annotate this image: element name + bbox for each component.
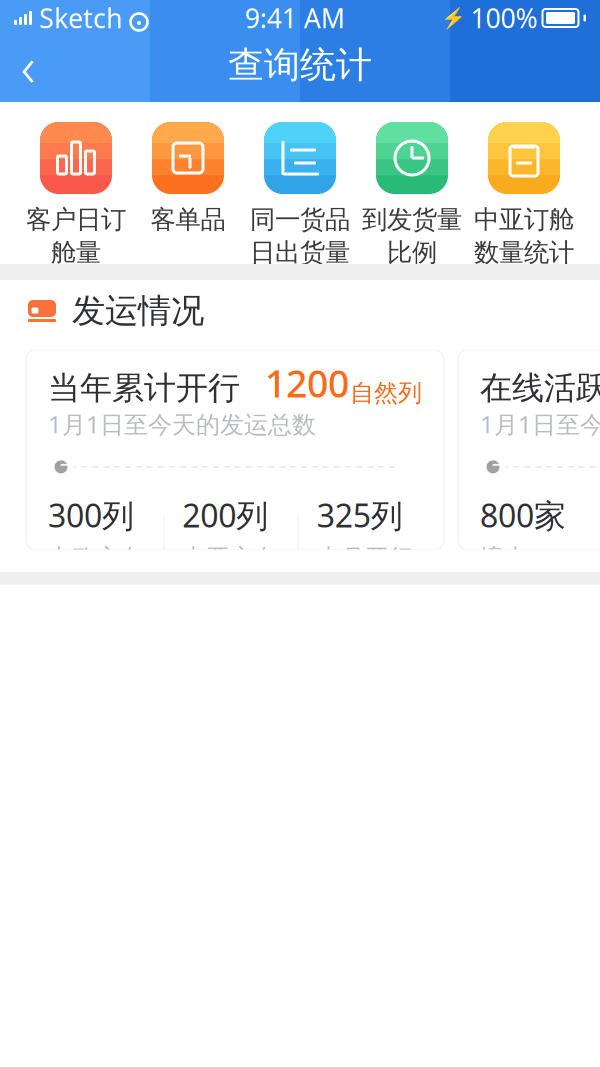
staticText: 舱量 <box>51 237 101 268</box>
staticText: 当年累计开行 <box>48 368 240 408</box>
staticText: 比例 <box>387 237 437 268</box>
staticText: 中欧方向 <box>48 543 144 573</box>
staticText: 9:41 AM <box>245 0 345 36</box>
button[interactable]: 客户日订 <box>20 122 132 256</box>
staticText: 本月开行 <box>317 543 413 573</box>
staticText: 客单品 <box>150 204 225 235</box>
staticText: 1月1日至今天的活跃客户 <box>480 408 600 440</box>
staticText: ⚡ <box>440 7 465 29</box>
staticText: 同一货品 <box>250 204 350 235</box>
button[interactable]: 到发货量 <box>356 122 468 256</box>
staticText: 中亚订舱 <box>474 204 574 235</box>
staticText: 800家 <box>480 494 566 536</box>
staticText: 200列 <box>182 494 268 536</box>
staticText: 客户日订 <box>26 204 126 235</box>
button[interactable]: 客单品 <box>132 122 244 256</box>
staticText: 发运情况 <box>72 290 204 331</box>
staticText: 日出货量 <box>250 237 350 268</box>
staticText: 境内 <box>480 543 528 573</box>
staticText: 数量统计 <box>474 237 574 268</box>
button[interactable]: 当年累计开行 <box>26 350 444 550</box>
staticText: 中亚方向 <box>182 543 278 573</box>
button[interactable]: Back <box>0 38 56 92</box>
staticText: 100% <box>470 0 537 36</box>
staticText: 300列 <box>48 494 134 536</box>
button[interactable]: 同一货品 <box>244 122 356 256</box>
button[interactable]: 在线活跃客户 <box>458 350 600 550</box>
staticText: 1月1日至今天的发运总数 <box>48 408 316 440</box>
staticText: ‹ <box>20 28 35 102</box>
staticText: Sketch <box>39 0 122 36</box>
staticText: 在线活跃客户 <box>480 368 600 408</box>
staticText: 到发货量 <box>362 204 462 235</box>
button[interactable]: 中亚订舱 <box>468 122 580 256</box>
staticText: 325列 <box>317 494 403 536</box>
staticText: 查询统计 <box>228 43 372 87</box>
staticText: 自然列 <box>350 378 422 408</box>
staticText: 1200 <box>265 358 349 408</box>
